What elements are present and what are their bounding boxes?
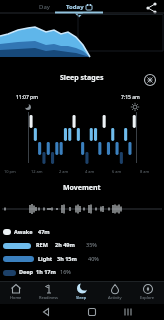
button[interactable]: Today bbox=[55, 0, 103, 13]
staticText: 2h 49m bbox=[55, 241, 75, 248]
staticText: Movement bbox=[63, 183, 101, 193]
button[interactable]: Day bbox=[28, 0, 60, 13]
button[interactable]: Sleep bbox=[65, 282, 98, 304]
button[interactable]: Explore bbox=[131, 282, 164, 304]
button[interactable] bbox=[142, 72, 158, 88]
staticText: Sleep stages bbox=[60, 73, 104, 83]
staticText: 3h 15m bbox=[57, 255, 77, 262]
button[interactable] bbox=[115, 303, 141, 320]
staticText: 8 am bbox=[140, 169, 150, 174]
staticText: 47m bbox=[38, 228, 50, 235]
button[interactable]: Readiness bbox=[32, 282, 65, 304]
staticText: 1h 17m bbox=[36, 268, 56, 275]
staticText: 35% bbox=[86, 241, 97, 248]
staticText: Day bbox=[39, 3, 50, 11]
staticText: 2 am bbox=[59, 169, 69, 174]
staticText: 16% bbox=[60, 268, 71, 275]
staticText: Home bbox=[10, 295, 22, 300]
staticText: 40% bbox=[88, 255, 99, 262]
staticText: Sleep bbox=[76, 295, 87, 300]
staticText: 11:07 pm bbox=[16, 94, 38, 101]
button[interactable]: Home bbox=[0, 282, 32, 304]
staticText: Explore bbox=[140, 295, 155, 300]
staticText: Today bbox=[66, 3, 84, 11]
staticText: REM bbox=[36, 241, 48, 248]
staticText: Activity bbox=[108, 295, 122, 300]
button[interactable] bbox=[33, 303, 59, 320]
button[interactable]: Activity bbox=[98, 282, 131, 304]
staticText: Readiness bbox=[39, 295, 59, 300]
button[interactable] bbox=[79, 303, 105, 320]
staticText: Awake bbox=[14, 228, 33, 235]
staticText: 7:15 am bbox=[121, 94, 140, 101]
button[interactable] bbox=[142, 0, 164, 14]
staticText: 12 am bbox=[31, 169, 43, 174]
staticText: 4 am bbox=[85, 169, 95, 174]
staticText: Deep bbox=[19, 268, 34, 275]
staticText: 6 am bbox=[112, 169, 122, 174]
staticText: 10 pm bbox=[4, 169, 16, 174]
staticText: Light bbox=[38, 255, 53, 262]
